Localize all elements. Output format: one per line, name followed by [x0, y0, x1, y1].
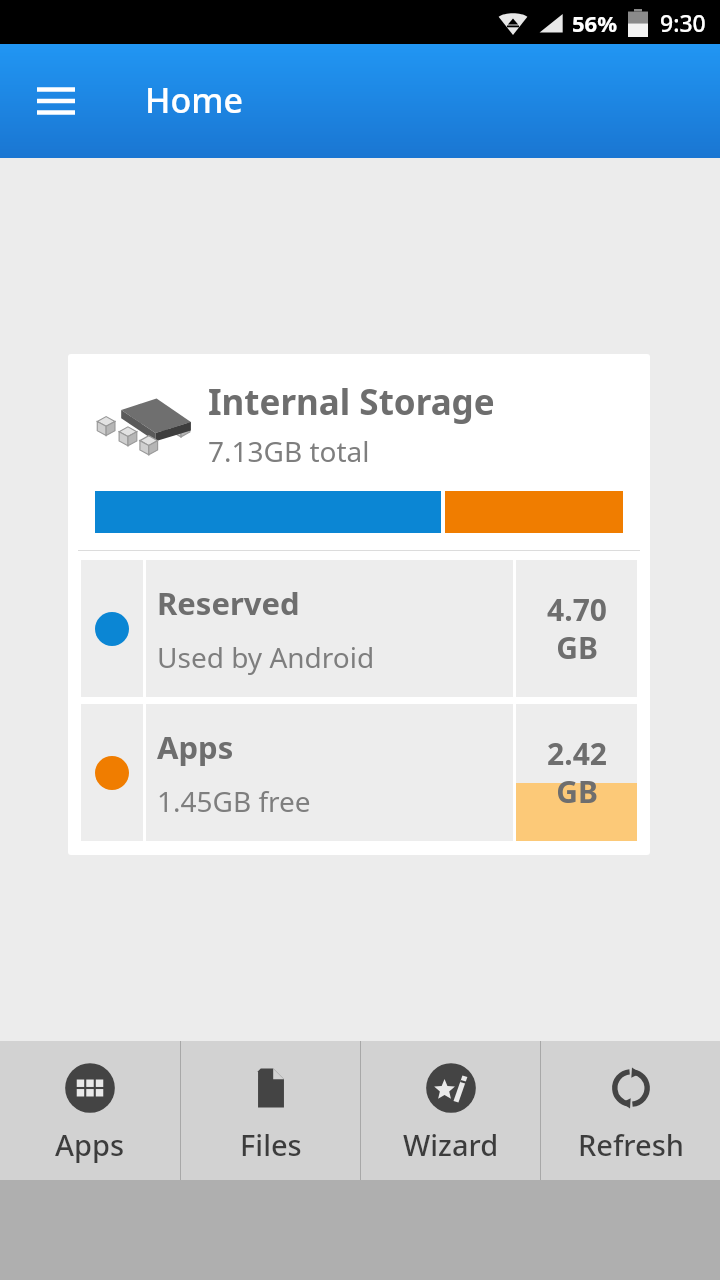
button[interactable]: Internal Storage [68, 354, 650, 855]
staticText: Home [145, 77, 243, 123]
button[interactable]: Refresh [541, 1041, 720, 1180]
staticText: Refresh [578, 1125, 684, 1164]
staticText: Reserved [157, 582, 300, 624]
staticText: Internal Storage [208, 378, 495, 426]
staticText: Wizard [403, 1125, 499, 1164]
staticText: Apps [55, 1125, 125, 1164]
button[interactable]: Apps [0, 1041, 180, 1180]
button[interactable]: Apps [81, 704, 637, 841]
button[interactable]: Files [181, 1041, 360, 1180]
staticText: Used by Android [157, 638, 375, 676]
staticText: 9:30 [660, 7, 706, 38]
staticText: 1.45GB free [157, 782, 311, 820]
staticText: 56% [572, 8, 618, 38]
staticText: 4.70 GB [547, 589, 607, 668]
staticText: 2.42 GB [547, 733, 607, 812]
button[interactable]: Reserved [81, 560, 637, 697]
button[interactable]: Open navigation menu [22, 67, 90, 135]
staticText: 7.13GB total [208, 432, 370, 470]
button[interactable]: Wizard [361, 1041, 540, 1180]
staticText: Files [240, 1125, 302, 1164]
staticText: Apps [157, 726, 234, 768]
